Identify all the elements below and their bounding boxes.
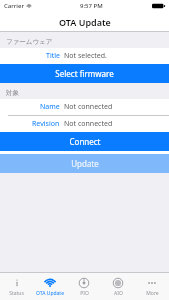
- button[interactable]: Name: [0, 99, 169, 115]
- staticText: Not selected.: [64, 51, 107, 61]
- button[interactable]: PIO: [67, 273, 101, 300]
- staticText: OTA Update: [36, 290, 64, 297]
- staticText: Name: [40, 102, 60, 112]
- staticText: ファームウェア: [6, 38, 53, 46]
- staticText: Carrier: [4, 2, 24, 10]
- staticText: Connect: [69, 136, 101, 147]
- button[interactable]: AIO: [101, 273, 135, 300]
- staticText: Revision: [32, 119, 60, 129]
- button[interactable]: Update: [0, 154, 169, 173]
- staticText: 対象: [6, 89, 19, 97]
- staticText: PIO: [80, 290, 89, 297]
- staticText: Not connected: [64, 119, 113, 129]
- staticText: Status: [9, 290, 24, 297]
- staticText: 9:57 PM: [80, 2, 103, 10]
- button[interactable]: Title: [0, 48, 169, 64]
- staticText: AIO: [114, 290, 123, 297]
- button[interactable]: Connect: [0, 132, 169, 151]
- button[interactable]: Revision: [0, 116, 169, 132]
- staticText: OTA Update: [59, 16, 111, 28]
- staticText: Update: [71, 158, 99, 169]
- button[interactable]: More: [135, 273, 169, 300]
- button[interactable]: OTA Update: [33, 273, 67, 300]
- staticText: More: [146, 290, 159, 297]
- staticText: Title: [46, 51, 60, 61]
- button[interactable]: Status: [0, 273, 33, 300]
- staticText: Not connected: [64, 102, 113, 112]
- staticText: Select firmware: [55, 68, 114, 79]
- button[interactable]: Select firmware: [0, 64, 169, 83]
